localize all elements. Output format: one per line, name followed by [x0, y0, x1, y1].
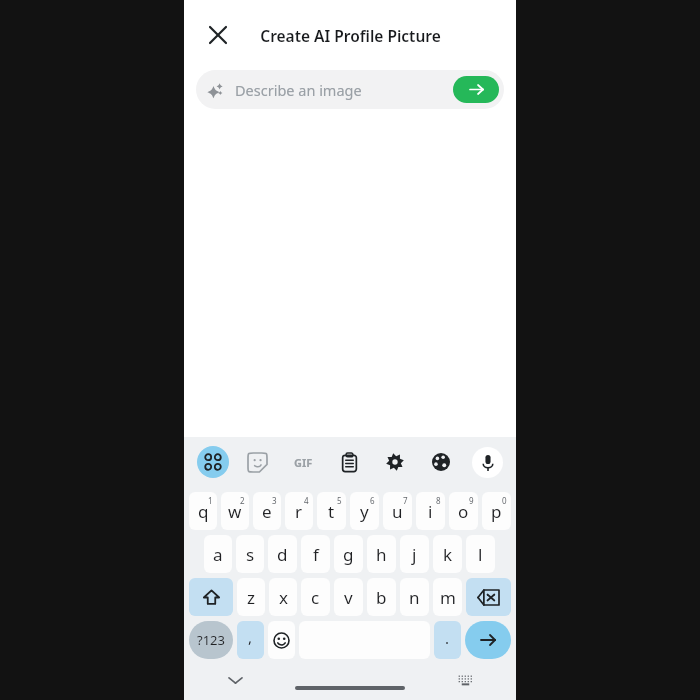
staticText: h: [376, 543, 387, 566]
staticText: .: [445, 628, 450, 648]
button[interactable]: Apps: [190, 437, 235, 487]
staticText: n: [409, 586, 420, 609]
staticText: z: [247, 586, 255, 609]
staticText: y: [360, 500, 369, 523]
staticText: 3: [272, 495, 277, 506]
button[interactable]: u: [383, 492, 412, 530]
staticText: q: [198, 500, 209, 523]
button[interactable]: Theme: [418, 437, 464, 487]
button[interactable]: Period: [434, 621, 461, 659]
button[interactable]: g: [334, 535, 363, 573]
button[interactable]: Enter: [465, 621, 511, 659]
button[interactable]: Backspace: [466, 578, 511, 616]
button[interactable]: Describe an image: [196, 70, 504, 109]
staticText: u: [392, 500, 403, 523]
button[interactable]: r: [285, 492, 313, 530]
button[interactable]: Comma: [237, 621, 264, 659]
button[interactable]: Shift: [189, 578, 233, 616]
button[interactable]: p: [482, 492, 511, 530]
staticText: f: [313, 543, 319, 566]
button[interactable]: e: [253, 492, 281, 530]
button[interactable]: Voice input: [464, 437, 510, 487]
staticText: 9: [469, 495, 474, 506]
button[interactable]: z: [237, 578, 265, 616]
button[interactable]: a: [204, 535, 232, 573]
button[interactable]: o: [449, 492, 478, 530]
staticText: p: [491, 500, 502, 523]
button[interactable]: y: [350, 492, 379, 530]
staticText: e: [262, 500, 272, 523]
button[interactable]: s: [236, 535, 264, 573]
button[interactable]: m: [433, 578, 462, 616]
staticText: Create AI Profile Picture: [260, 25, 441, 46]
staticText: o: [458, 500, 469, 523]
button[interactable]: Clipboard: [326, 437, 372, 487]
staticText: j: [412, 543, 417, 566]
staticText: 6: [370, 495, 375, 506]
button[interactable]: Close: [196, 13, 240, 57]
staticText: GIF: [294, 455, 313, 470]
button[interactable]: v: [334, 578, 363, 616]
staticText: a: [213, 543, 223, 566]
staticText: g: [343, 543, 354, 566]
button[interactable]: d: [268, 535, 297, 573]
staticText: l: [478, 543, 483, 566]
button[interactable]: Switch keyboard: [450, 665, 480, 695]
button[interactable]: k: [433, 535, 462, 573]
button[interactable]: GIF: [280, 437, 326, 487]
staticText: 1: [208, 495, 213, 506]
staticText: i: [428, 500, 433, 523]
button[interactable]: b: [367, 578, 396, 616]
staticText: b: [376, 586, 387, 609]
button[interactable]: i: [416, 492, 445, 530]
staticText: 0: [502, 495, 507, 506]
staticText: w: [228, 500, 242, 523]
staticText: d: [277, 543, 288, 566]
staticText: Describe an image: [235, 80, 362, 100]
button[interactable]: Settings: [372, 437, 418, 487]
staticText: ,: [248, 627, 253, 647]
button[interactable]: ?123: [189, 621, 233, 659]
button[interactable]: x: [269, 578, 297, 616]
staticText: s: [246, 543, 255, 566]
staticText: r: [295, 500, 303, 523]
button[interactable]: Hide keyboard: [220, 665, 250, 695]
button[interactable]: n: [400, 578, 429, 616]
staticText: 5: [337, 495, 342, 506]
button[interactable]: c: [301, 578, 330, 616]
staticText: 7: [403, 495, 408, 506]
button[interactable]: Stickers: [235, 437, 280, 487]
staticText: m: [440, 586, 456, 609]
button[interactable]: f: [301, 535, 330, 573]
button[interactable]: w: [221, 492, 249, 530]
staticText: k: [443, 543, 453, 566]
button[interactable]: h: [367, 535, 396, 573]
staticText: 8: [436, 495, 441, 506]
staticText: 4: [304, 495, 309, 506]
button[interactable]: q: [189, 492, 217, 530]
staticText: ?123: [197, 631, 225, 649]
button[interactable]: Emoji: [268, 621, 295, 659]
staticText: v: [344, 586, 353, 609]
button[interactable]: j: [400, 535, 429, 573]
staticText: 2: [240, 495, 245, 506]
staticText: t: [328, 500, 335, 523]
button[interactable]: l: [466, 535, 495, 573]
staticText: x: [279, 586, 288, 609]
staticText: c: [311, 586, 320, 609]
button[interactable]: Generate: [453, 76, 499, 103]
button[interactable]: t: [317, 492, 346, 530]
